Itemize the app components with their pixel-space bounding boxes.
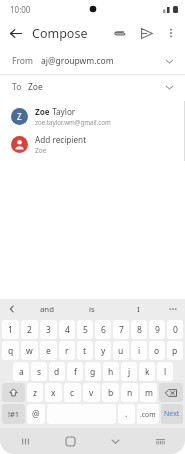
button[interactable]: 5 bbox=[77, 320, 93, 339]
staticText: To bbox=[12, 81, 22, 93]
staticText: l bbox=[164, 366, 167, 378]
button[interactable]: More options bbox=[159, 21, 183, 45]
button[interactable]: 2 bbox=[21, 320, 38, 339]
button[interactable]: 8 bbox=[131, 320, 147, 339]
button[interactable]: Send bbox=[133, 20, 159, 46]
staticText: Add recipient bbox=[35, 134, 87, 145]
button[interactable]: z bbox=[27, 383, 43, 402]
button[interactable]: Hide keyboard bbox=[104, 430, 126, 452]
button[interactable]: Attach file bbox=[107, 20, 133, 46]
staticText: . bbox=[125, 408, 128, 420]
button[interactable]: v bbox=[83, 383, 100, 402]
staticText: j bbox=[128, 366, 131, 378]
button[interactable]: To bbox=[0, 75, 185, 99]
button[interactable]: Next bbox=[161, 404, 183, 424]
button[interactable]: Shift bbox=[2, 383, 25, 402]
button[interactable]: Keyboard settings bbox=[149, 430, 171, 452]
staticText: Taylor bbox=[50, 106, 76, 117]
staticText: Z bbox=[17, 111, 22, 122]
button[interactable]: 0 bbox=[167, 320, 183, 339]
button[interactable]: More suggestions bbox=[161, 299, 185, 319]
button[interactable]: l bbox=[157, 362, 173, 381]
button[interactable]: Add recipient bbox=[0, 130, 185, 158]
button[interactable]: u bbox=[113, 341, 129, 360]
staticText: aj@groupwm.com bbox=[41, 55, 114, 67]
staticText: q bbox=[8, 345, 14, 357]
staticText: o bbox=[154, 345, 160, 357]
button[interactable]: I bbox=[115, 299, 161, 319]
button[interactable]: p bbox=[167, 341, 183, 360]
staticText: 9 bbox=[155, 324, 160, 336]
staticText: 0 bbox=[173, 324, 178, 336]
staticText: is bbox=[89, 304, 95, 315]
staticText: n bbox=[127, 387, 133, 399]
button[interactable]: r bbox=[59, 341, 75, 360]
button[interactable]: i bbox=[131, 341, 147, 360]
staticText: x bbox=[51, 387, 56, 399]
button[interactable]: a bbox=[13, 362, 29, 381]
button[interactable]: !#1 bbox=[2, 404, 25, 424]
button[interactable]: k bbox=[139, 362, 155, 381]
staticText: d bbox=[54, 366, 60, 378]
staticText: e bbox=[46, 345, 51, 357]
button[interactable]: b bbox=[102, 383, 119, 402]
button[interactable]: f bbox=[67, 362, 83, 381]
button[interactable]: Backspace bbox=[159, 383, 183, 402]
staticText: Next bbox=[164, 409, 180, 419]
staticText: Zoe bbox=[35, 106, 50, 117]
button[interactable]: .com bbox=[137, 404, 159, 424]
staticText: 10:00 bbox=[10, 4, 31, 15]
button[interactable]: d bbox=[49, 362, 65, 381]
button[interactable]: 6 bbox=[95, 320, 111, 339]
button[interactable]: Back bbox=[0, 18, 30, 48]
button[interactable]: 7 bbox=[113, 320, 129, 339]
staticText: From bbox=[12, 55, 33, 67]
staticText: 7 bbox=[119, 324, 124, 336]
staticText: u bbox=[118, 345, 124, 357]
staticText: .com bbox=[140, 410, 156, 419]
button[interactable]: c bbox=[64, 383, 81, 402]
button[interactable]: 9 bbox=[149, 320, 165, 339]
button[interactable]: o bbox=[149, 341, 165, 360]
button[interactable]: 4 bbox=[59, 320, 75, 339]
button[interactable]: t bbox=[77, 341, 93, 360]
staticText: zoe.taylor.wm@gmail.com bbox=[35, 118, 111, 126]
button[interactable]: w bbox=[21, 341, 38, 360]
staticText: z bbox=[33, 387, 37, 399]
staticText: Compose bbox=[32, 25, 88, 42]
staticText: r bbox=[65, 345, 69, 357]
button[interactable]: j bbox=[121, 362, 137, 381]
button[interactable]: s bbox=[31, 362, 47, 381]
button[interactable]: h bbox=[103, 362, 119, 381]
staticText: 3 bbox=[46, 324, 51, 336]
button[interactable]: g bbox=[85, 362, 101, 381]
button[interactable]: n bbox=[121, 383, 138, 402]
staticText: 2 bbox=[27, 324, 32, 336]
button[interactable]: @ bbox=[27, 404, 45, 424]
staticText: I bbox=[137, 304, 140, 315]
staticText: t bbox=[83, 345, 87, 357]
staticText: 8 bbox=[137, 324, 142, 336]
button[interactable]: Previous suggestions bbox=[0, 299, 24, 319]
button[interactable]: Z bbox=[0, 102, 185, 130]
staticText: @ bbox=[32, 408, 40, 420]
button[interactable]: 1 bbox=[2, 320, 19, 339]
button[interactable]: m bbox=[140, 383, 157, 402]
button[interactable]: From bbox=[0, 48, 185, 74]
staticText: 1 bbox=[8, 324, 13, 336]
button[interactable]: e bbox=[40, 341, 57, 360]
staticText: w bbox=[26, 345, 33, 357]
button[interactable]: x bbox=[45, 383, 62, 402]
button[interactable]: Home bbox=[59, 430, 81, 452]
staticText: i bbox=[138, 345, 141, 357]
button[interactable]: Recents bbox=[14, 430, 36, 452]
button[interactable]: is bbox=[69, 299, 115, 319]
button[interactable]: q bbox=[2, 341, 19, 360]
button[interactable]: 3 bbox=[40, 320, 57, 339]
staticText: 5 bbox=[83, 324, 88, 336]
button[interactable]: y bbox=[95, 341, 111, 360]
button[interactable]: and bbox=[24, 299, 69, 319]
staticText: !#1 bbox=[8, 409, 20, 419]
button[interactable]: . bbox=[118, 404, 135, 424]
